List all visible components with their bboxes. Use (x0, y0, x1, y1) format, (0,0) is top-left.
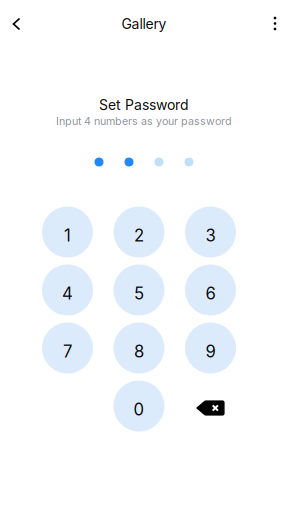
staticText: 8 (134, 341, 144, 362)
button[interactable]: 1 (42, 206, 93, 257)
staticText: Input 4 numbers as your password (56, 114, 232, 127)
button[interactable]: More options (240, 3, 288, 43)
button[interactable]: 9 (185, 322, 236, 373)
button[interactable]: 2 (113, 206, 164, 257)
staticText: 1 (64, 225, 71, 246)
staticText: 9 (205, 341, 215, 362)
staticText: Set Password (99, 96, 189, 113)
button[interactable]: Back (0, 4, 48, 44)
staticText: 0 (133, 399, 144, 420)
staticText: Gallery (121, 15, 166, 32)
button[interactable]: 8 (113, 322, 164, 373)
staticText: 6 (205, 283, 215, 304)
staticText: 3 (205, 225, 215, 246)
button[interactable]: 6 (185, 264, 236, 315)
staticText: 7 (63, 341, 72, 362)
button[interactable]: Delete (185, 382, 236, 433)
button[interactable]: 5 (113, 264, 164, 315)
button[interactable]: 0 (113, 380, 164, 431)
button[interactable]: 3 (185, 206, 236, 257)
button[interactable]: 7 (42, 322, 93, 373)
staticText: 2 (134, 225, 144, 246)
button[interactable]: 4 (42, 264, 93, 315)
staticText: 4 (62, 283, 73, 304)
staticText: 5 (134, 283, 144, 304)
